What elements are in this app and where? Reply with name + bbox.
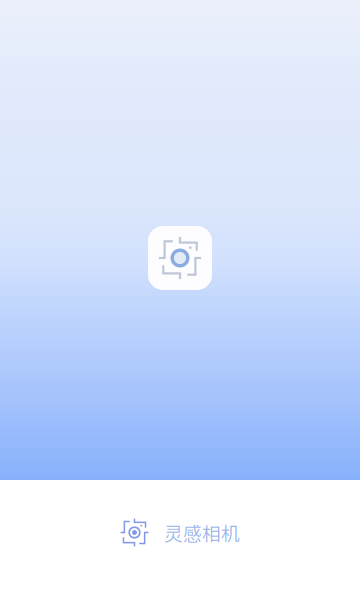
staticText: 灵感相机 <box>164 519 240 546</box>
button[interactable]: 灵感相机 <box>120 518 240 547</box>
